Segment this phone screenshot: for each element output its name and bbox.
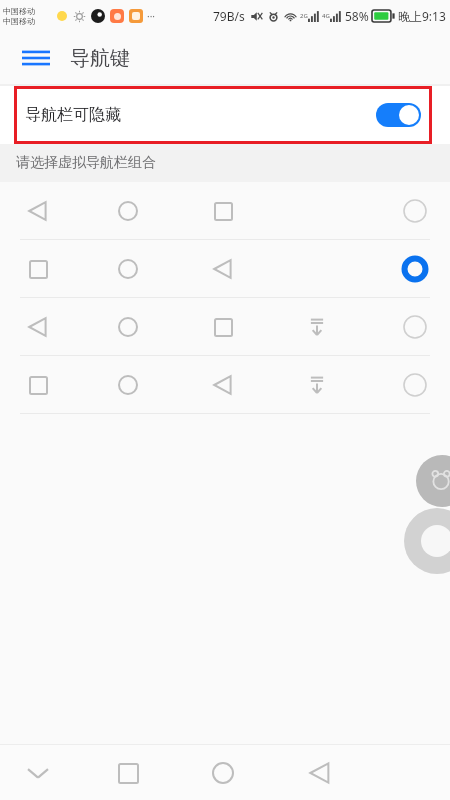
staticText: 晚上9:13 [398,8,446,24]
staticText: 导航栏可隐藏 [25,105,121,125]
staticText: 4G [322,12,330,20]
button[interactable]: Not selected [0,182,450,239]
button[interactable]: Hide [16,751,60,795]
button[interactable]: Home [201,751,245,795]
button[interactable]: Selected [398,252,432,286]
button[interactable]: Selected [0,240,450,297]
button[interactable]: Menu [14,36,58,80]
staticText: 中国移动 [3,6,35,16]
button[interactable]: Not selected [0,356,450,413]
button[interactable]: Not selected [398,194,432,228]
staticText: 2G [300,12,308,20]
button[interactable]: Recents [106,751,150,795]
staticText: 请选择虚拟导航栏组合 [16,154,156,172]
button[interactable]: Not selected [398,310,432,344]
button[interactable]: Not selected [0,298,450,355]
staticText: 79B/s [213,8,245,24]
button[interactable]: Assistant [416,455,450,507]
staticText: 导航键 [70,46,130,71]
staticText: 58% [345,8,369,24]
staticText: ··· [147,9,156,23]
button[interactable]: Not selected [398,368,432,402]
button[interactable]: 导航栏可隐藏 [17,89,429,141]
button[interactable]: Back [298,751,342,795]
staticText: 中国移动 [3,16,35,26]
button[interactable]: Floating button [404,508,450,574]
